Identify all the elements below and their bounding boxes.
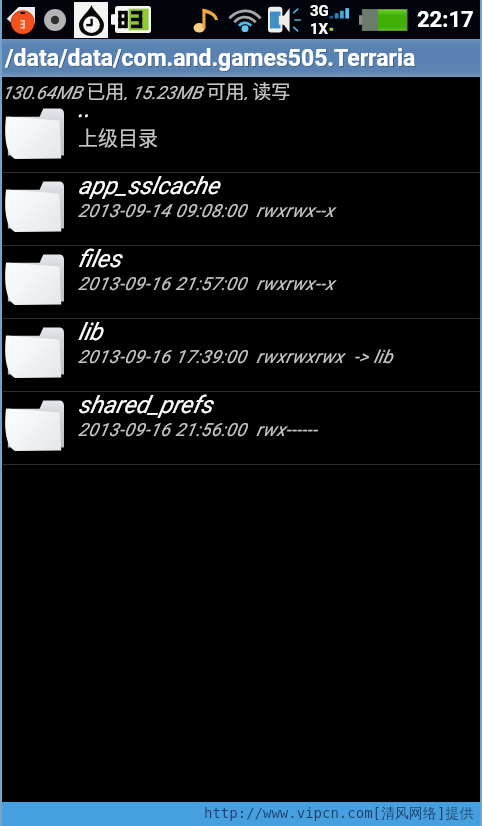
staticText: 22:17 [417,7,474,33]
button[interactable]: .. [0,100,482,172]
staticText: 3G [310,2,329,20]
staticText: app_sslcache [78,172,220,200]
staticText: .. [78,95,91,123]
button[interactable]: /data/data/com.and.games505.Terraria [0,39,482,77]
staticText: files [78,245,121,273]
button[interactable]: lib [0,319,482,391]
staticText: 130.64MB 已用, 15.23MB 可用, 读写 [2,77,291,100]
staticText: http://www.vipcn.com[清风网络]提供 [204,805,474,823]
staticText: 2013-09-16 17:39:00 rwxrwxrwx -> lib [78,346,394,367]
button[interactable]: shared_prefs [0,392,482,464]
staticText: 2013-09-16 21:57:00 rwxrwx--x [78,273,335,294]
staticText: 2013-09-16 21:56:00 rwx------ [78,419,318,440]
staticText: 2013-09-14 09:08:00 rwxrwx--x [78,200,335,221]
button[interactable]: files [0,246,482,318]
staticText: lib [78,318,103,346]
staticText: /data/data/com.and.games505.Terraria [6,46,417,73]
staticText: /data/data/com.and.games505.Terraria [5,45,416,72]
staticText: 上级目录 [78,123,158,152]
staticText: shared_prefs [78,391,213,419]
button[interactable]: app_sslcache [0,173,482,245]
staticText: 1X [310,20,329,38]
